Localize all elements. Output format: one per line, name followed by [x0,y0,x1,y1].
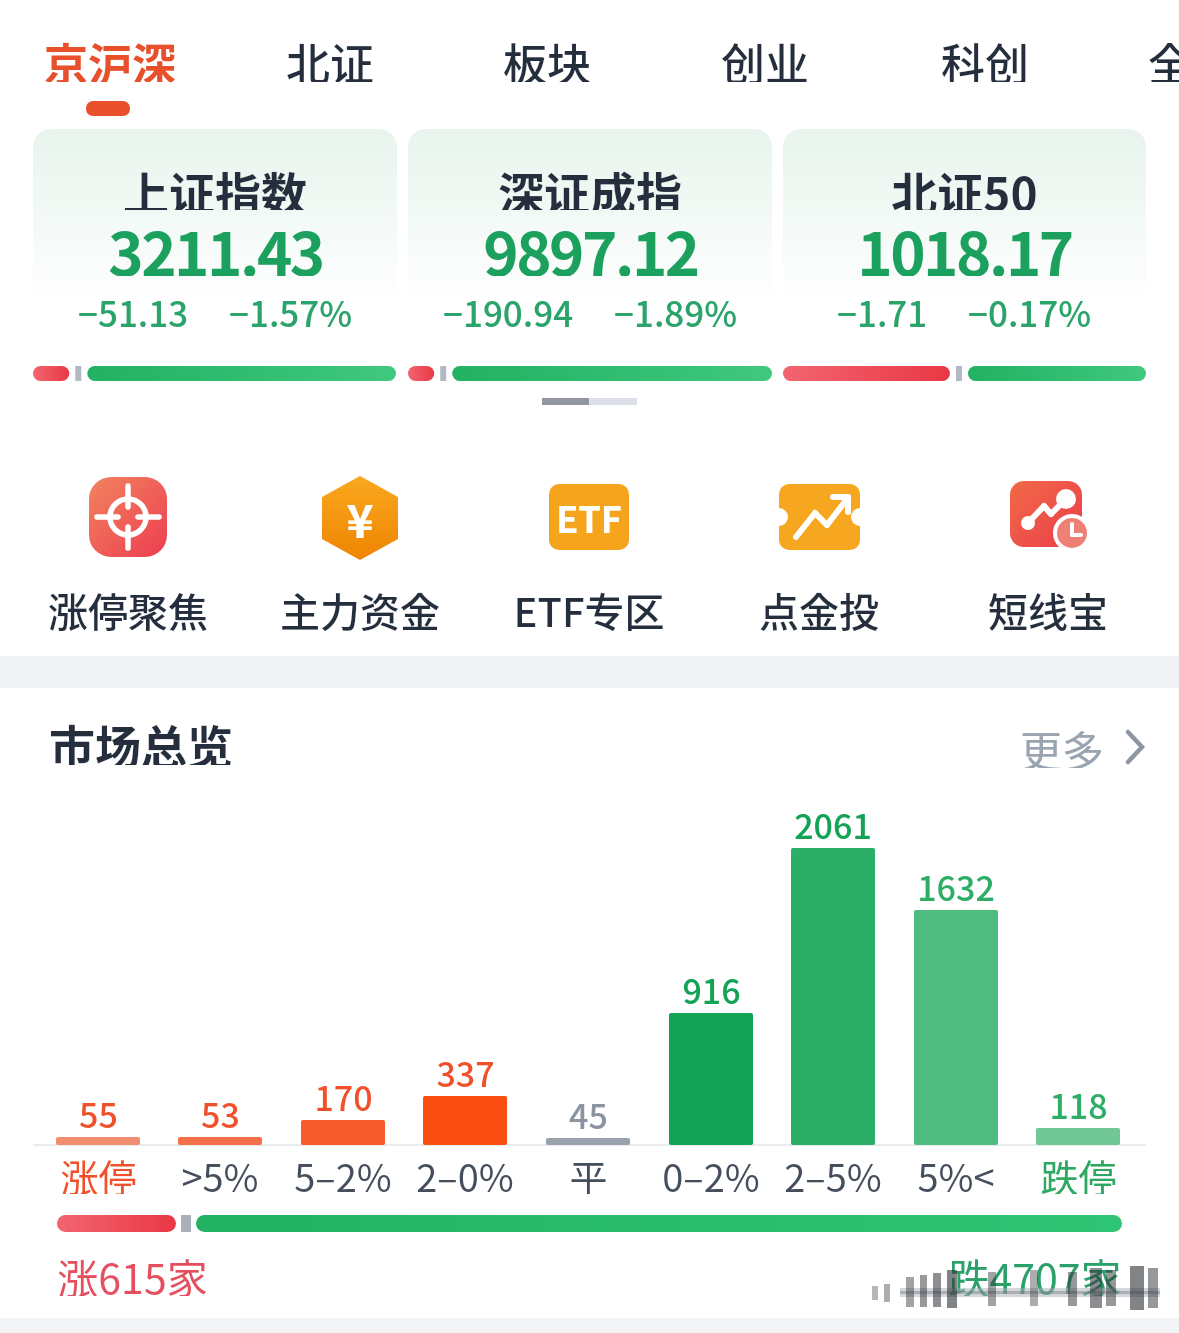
staticText: 1632 [917,862,995,906]
staticText: ETF专区 [513,581,665,631]
staticText: 45 [569,1090,608,1134]
staticText: 平 [569,1148,608,1194]
button[interactable] [474,470,704,635]
staticText: 118 [1049,1080,1108,1124]
button[interactable] [13,470,243,635]
staticText: 9897.12 [483,206,698,276]
staticText: 短线宝 [988,581,1108,631]
staticText: 板块 [503,30,591,82]
staticText: 创业 [721,30,809,82]
button[interactable]: 北证 [282,30,378,82]
staticText: 916 [682,965,741,1009]
button[interactable]: 创业 [717,30,813,82]
button[interactable]: 板块 [499,30,595,82]
staticText: 2–0% [416,1148,514,1194]
staticText: 北证 [286,30,374,82]
button[interactable] [933,470,1163,635]
staticText: 3211.43 [108,206,323,276]
staticText: ETF [556,491,622,543]
staticText: 点金投 [759,581,879,631]
staticText: −1.89% [614,286,738,328]
staticText: 涨615家 [57,1246,208,1296]
staticText: 京沪深 [44,30,176,82]
button[interactable] [408,129,772,349]
staticText: ¥ [346,485,374,552]
staticText: 上证指数 [123,158,307,210]
staticText: 深证成指 [498,158,682,210]
staticText: 主力资金 [280,581,440,631]
button[interactable] [1020,720,1160,774]
staticText: 涨停 [60,1148,137,1194]
staticText: 53 [201,1089,240,1133]
button[interactable] [33,129,397,349]
staticText: 337 [436,1048,495,1092]
button[interactable] [704,470,934,635]
staticText: 跌停 [1040,1148,1117,1194]
staticText: 2061 [794,800,872,844]
staticText: −0.17% [968,286,1092,328]
staticText: 1018.17 [857,206,1072,276]
staticText: 2–5% [784,1148,882,1194]
staticText: 全部 [1148,30,1179,82]
button[interactable] [245,470,475,635]
button[interactable] [783,129,1146,349]
staticText: 55 [79,1089,118,1133]
staticText: 市场总览 [49,711,233,765]
staticText: 170 [314,1072,373,1116]
staticText: −1.57% [229,286,353,328]
staticText: 涨停聚焦 [48,581,208,631]
staticText: 更多 [1020,718,1104,768]
button[interactable]: 科创 [937,30,1033,82]
button[interactable]: 京沪深 [40,30,180,82]
staticText: 科创 [941,30,1029,82]
staticText: −1.71 [837,286,928,328]
staticText: 北证50 [891,158,1038,210]
staticText: −51.13 [78,286,189,328]
staticText: >5% [181,1148,259,1194]
staticText: 5%< [917,1148,995,1194]
staticText: −190.94 [443,286,574,328]
staticText: 5–2% [294,1148,392,1194]
staticText: 跌4707家 [948,1246,1122,1296]
staticText: 0–2% [662,1148,760,1194]
